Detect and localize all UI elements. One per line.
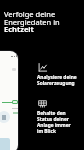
staticText: Behalte den Status deiner Anlage immer i… xyxy=(37,110,71,134)
staticText: Analysiere deine Solarerzeugung xyxy=(37,74,77,86)
other: Analysiere deine Solarerzeugung xyxy=(38,63,47,72)
staticText: Verfolge deine Energiedaten in Echtzeit xyxy=(4,9,60,34)
other: Behalte den Status deiner Anlage im Blic… xyxy=(38,99,47,108)
button[interactable]: Behalte den Status deiner Anlage im Blic… xyxy=(37,99,84,134)
button[interactable]: Analysiere deine Solarerzeugung xyxy=(37,63,84,86)
